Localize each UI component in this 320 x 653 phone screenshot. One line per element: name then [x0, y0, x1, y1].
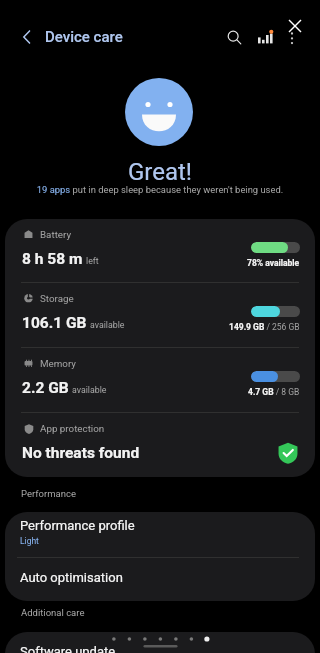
- staticText: Battery: [40, 229, 72, 240]
- staticText: 2.2 GB: [22, 379, 69, 397]
- button[interactable]: Memory: [5, 348, 315, 412]
- staticText: 8 h 58 m: [22, 250, 83, 268]
- staticText: 78% available: [247, 258, 300, 268]
- button[interactable]: Software update: [5, 632, 315, 653]
- staticText: Software update: [20, 644, 116, 653]
- staticText: Auto optimisation: [20, 570, 123, 585]
- staticText: Performance profile: [20, 518, 135, 533]
- button[interactable]: Back: [12, 22, 42, 52]
- staticText: Light: [20, 536, 39, 546]
- staticText: left: [86, 256, 99, 266]
- staticText: Great!: [0, 158, 320, 186]
- button[interactable]: Storage: [5, 283, 315, 347]
- staticText: available: [72, 385, 107, 395]
- button[interactable]: App protection: [5, 413, 315, 477]
- staticText: 19 apps put in deep sleep because they w…: [0, 184, 320, 195]
- button[interactable]: Performance profile: [5, 512, 315, 557]
- button[interactable]: More options: [280, 22, 310, 52]
- staticText: Performance: [21, 488, 76, 499]
- staticText: 106.1 GB: [22, 314, 87, 332]
- staticText: Additional care: [21, 607, 85, 618]
- staticText: No threats found: [22, 444, 140, 462]
- button[interactable]: Search: [219, 22, 249, 52]
- staticText: Storage: [40, 293, 74, 304]
- staticText: Device care: [45, 28, 123, 46]
- staticText: Memory: [40, 358, 76, 369]
- staticText: 4.7 GB / 8 GB: [248, 387, 300, 397]
- staticText: App protection: [40, 423, 105, 434]
- button[interactable]: Auto optimisation: [5, 558, 315, 601]
- button[interactable]: Usage statistics: [249, 22, 279, 52]
- staticText: available: [90, 320, 125, 330]
- staticText: 149.9 GB / 256 GB: [229, 322, 300, 332]
- button[interactable]: Battery: [5, 219, 315, 282]
